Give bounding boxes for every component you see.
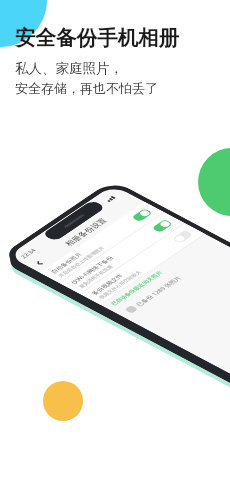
staticText: 仅Wi-Fi网络下备份 xyxy=(69,255,116,285)
staticText: 22:34 xyxy=(19,247,39,260)
staticText: 私人、家庭照片， xyxy=(15,60,123,77)
button[interactable]: 备份视频文件 xyxy=(79,223,206,305)
button[interactable]: 自动备份照片 xyxy=(39,201,165,283)
staticText: 安全存储，再也不怕丢了 xyxy=(15,80,158,96)
staticText: 备份视频文件 xyxy=(89,273,125,296)
staticText: 自动备份照片 xyxy=(48,251,85,275)
staticText: 已自动备份最近30天照片 xyxy=(108,269,166,307)
staticText: 相册备份设置 xyxy=(62,216,110,247)
staticText: 避免消耗手机流量 xyxy=(77,264,114,289)
staticText: 视频文件占用空间较大 xyxy=(97,270,143,299)
button[interactable]: 仅Wi-Fi网络下备份 xyxy=(59,212,185,294)
staticText: 安全备份手机相册 xyxy=(15,25,179,51)
staticText: 开启后自动上传新增照片 xyxy=(56,245,106,278)
staticText: 已备份 1289 张照片 xyxy=(134,275,184,308)
